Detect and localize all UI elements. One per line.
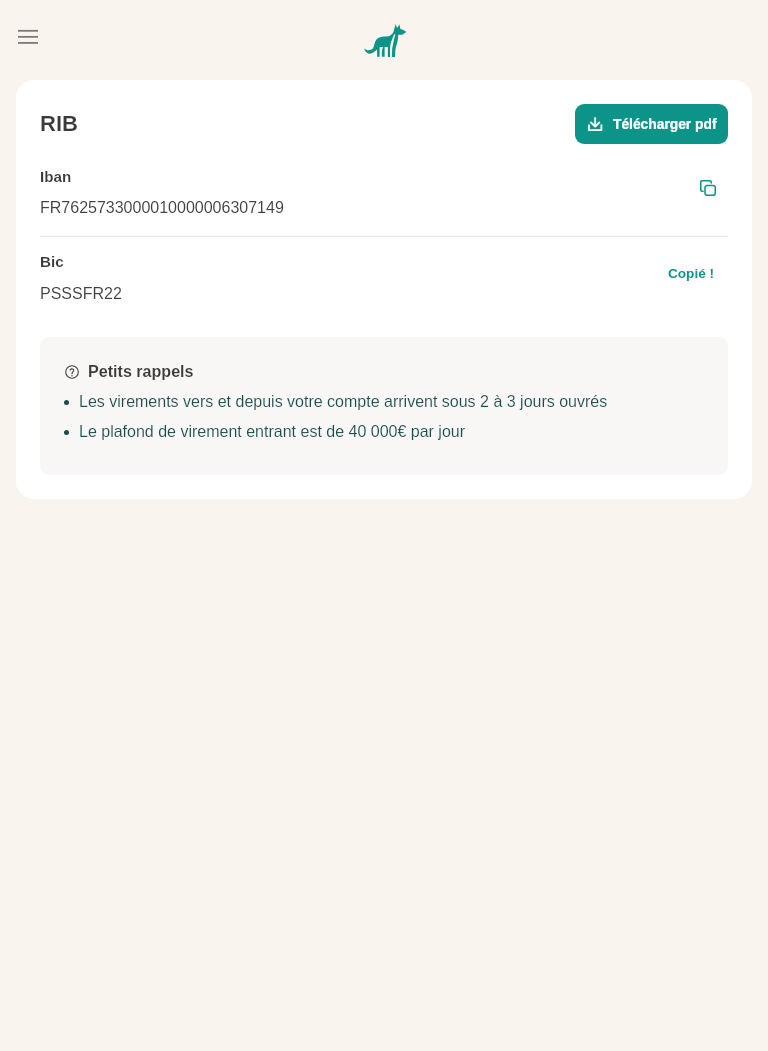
staticText: Iban <box>40 168 72 185</box>
staticText: Bic <box>40 253 64 270</box>
staticText: PSSSFR22 <box>40 285 122 303</box>
staticText: FR7625733000010000006307149 <box>40 199 284 217</box>
staticText: Petits rappels <box>88 362 194 380</box>
staticText: Le plafond de virement entrant est de 40… <box>79 423 466 441</box>
staticText: Copié ! <box>668 266 715 281</box>
staticText: RIB <box>40 111 78 136</box>
staticText: Télécharger pdf <box>613 117 717 132</box>
button[interactable]: Copié ! <box>662 259 721 287</box>
staticText: Les virements vers et depuis votre compt… <box>79 393 608 411</box>
button[interactable]: Menu <box>12 21 44 53</box>
button[interactable]: Télécharger pdf <box>575 104 728 144</box>
button[interactable]: Copier <box>692 172 724 204</box>
